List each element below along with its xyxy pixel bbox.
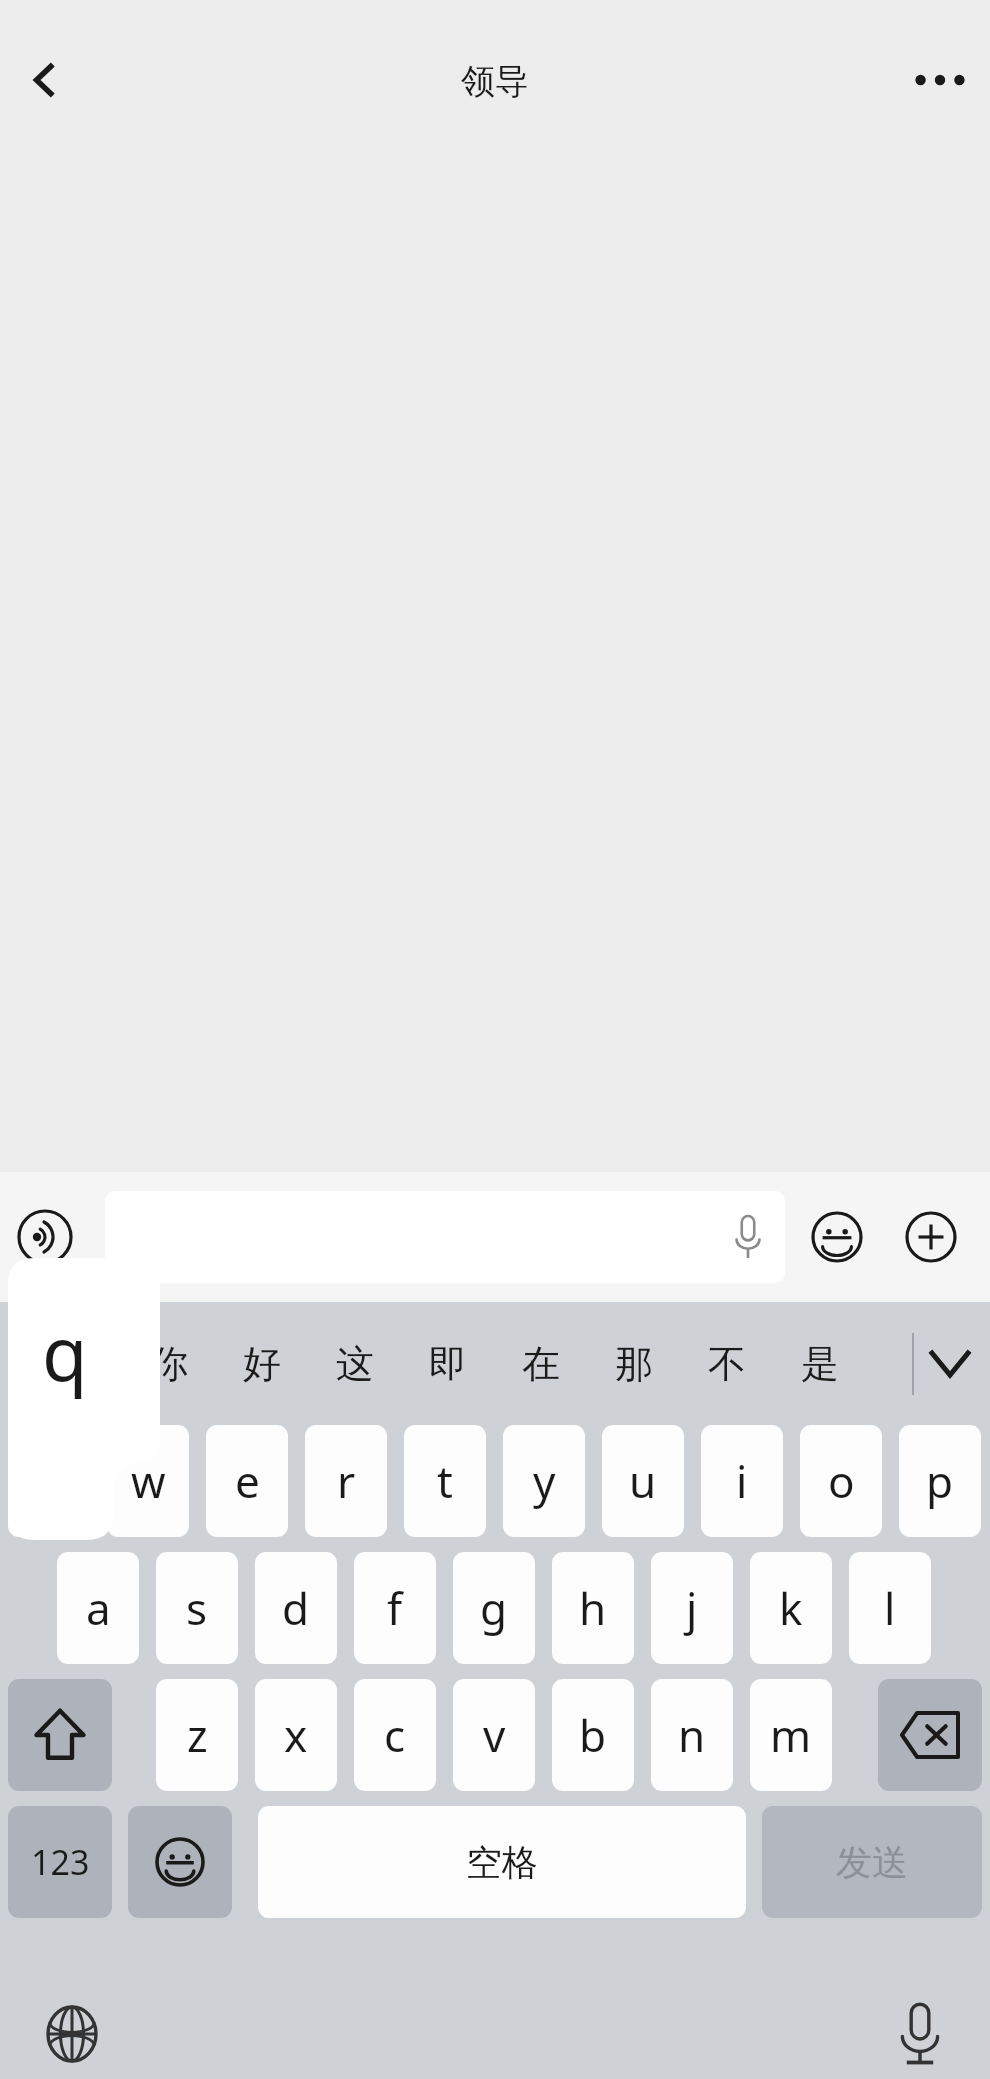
staticText: 好 (243, 1340, 281, 1388)
button[interactable]: l (849, 1552, 931, 1664)
staticText: 这 (336, 1340, 374, 1388)
staticText: 123 (31, 1839, 90, 1885)
staticText: r (337, 1451, 356, 1511)
staticText: o (828, 1451, 855, 1511)
button[interactable]: t (404, 1425, 486, 1537)
staticText: 不 (708, 1340, 746, 1388)
button[interactable]: j (651, 1552, 733, 1664)
staticText: m (770, 1705, 812, 1765)
button[interactable]: 发送 (762, 1806, 982, 1918)
staticText: n (678, 1705, 706, 1765)
button[interactable]: o (800, 1425, 882, 1537)
button[interactable]: 恩 (38, 1309, 114, 1419)
button[interactable]: Voice input (14, 1206, 76, 1268)
button[interactable]: g (453, 1552, 535, 1664)
button[interactable]: Emoji (806, 1206, 868, 1268)
button[interactable]: r (305, 1425, 387, 1537)
button[interactable]: 那 (596, 1309, 672, 1419)
button[interactable]: d (255, 1552, 337, 1664)
button[interactable]: Collapse candidates (918, 1332, 982, 1396)
button[interactable]: 是 (782, 1309, 858, 1419)
button[interactable]: 123 (8, 1806, 112, 1918)
button[interactable]: b (552, 1679, 634, 1791)
button[interactable]: m (750, 1679, 832, 1791)
staticText: v (483, 1705, 506, 1765)
button[interactable]: 空格 (258, 1806, 746, 1918)
staticText: h (579, 1578, 607, 1638)
staticText: t (437, 1451, 453, 1511)
staticText: x (284, 1705, 308, 1765)
button[interactable]: k (750, 1552, 832, 1664)
staticText: y (533, 1451, 556, 1511)
staticText: q (42, 1302, 88, 1403)
button[interactable]: 这 (317, 1309, 393, 1419)
button[interactable]: 好 (224, 1309, 300, 1419)
staticText: u (629, 1451, 657, 1511)
staticText: 发送 (836, 1840, 908, 1885)
staticText: l (884, 1578, 896, 1638)
staticText: 恩 (57, 1340, 95, 1388)
button[interactable]: n (651, 1679, 733, 1791)
button[interactable] (105, 1191, 785, 1283)
staticText: 那 (615, 1340, 653, 1388)
staticText: f (387, 1578, 403, 1638)
button[interactable]: e (206, 1425, 288, 1537)
button[interactable]: Backspace (878, 1679, 982, 1791)
button[interactable]: 在 (503, 1309, 579, 1419)
button[interactable]: More options (902, 42, 978, 118)
staticText: g (480, 1578, 508, 1638)
button[interactable]: a (57, 1552, 139, 1664)
staticText: i (736, 1451, 748, 1511)
staticText: a (86, 1578, 111, 1638)
button[interactable]: h (552, 1552, 634, 1664)
staticText: z (187, 1705, 208, 1765)
staticText: 即 (429, 1340, 467, 1388)
button[interactable]: p (899, 1425, 981, 1537)
button[interactable]: Shift (8, 1679, 112, 1791)
staticText: s (186, 1578, 208, 1638)
button[interactable]: Back (8, 44, 80, 116)
button[interactable]: 不 (689, 1309, 765, 1419)
staticText: j (686, 1578, 698, 1638)
staticText: w (131, 1451, 166, 1511)
button[interactable]: f (354, 1552, 436, 1664)
staticText: 在 (522, 1340, 560, 1388)
button[interactable]: Switch language (30, 1992, 114, 2076)
button[interactable]: u (602, 1425, 684, 1537)
staticText: b (579, 1705, 607, 1765)
button[interactable]: x (255, 1679, 337, 1791)
staticText: d (282, 1578, 310, 1638)
button[interactable]: w (107, 1425, 189, 1537)
button[interactable]: c (354, 1679, 436, 1791)
button[interactable]: y (503, 1425, 585, 1537)
button[interactable]: v (453, 1679, 535, 1791)
staticText: e (235, 1451, 260, 1511)
button[interactable]: i (701, 1425, 783, 1537)
button[interactable]: Voice input (878, 1992, 962, 2076)
button[interactable]: More (900, 1206, 962, 1268)
staticText: p (926, 1451, 954, 1511)
staticText: k (779, 1578, 803, 1638)
staticText: 领导 (461, 60, 529, 103)
staticText: 空格 (466, 1840, 538, 1885)
button[interactable]: z (156, 1679, 238, 1791)
staticText: 是 (801, 1340, 839, 1388)
button[interactable]: 你 (131, 1309, 207, 1419)
button[interactable]: 即 (410, 1309, 486, 1419)
staticText: c (384, 1705, 406, 1765)
staticText: 你 (150, 1340, 188, 1388)
button[interactable]: Emoji keyboard (128, 1806, 232, 1918)
button[interactable]: s (156, 1552, 238, 1664)
